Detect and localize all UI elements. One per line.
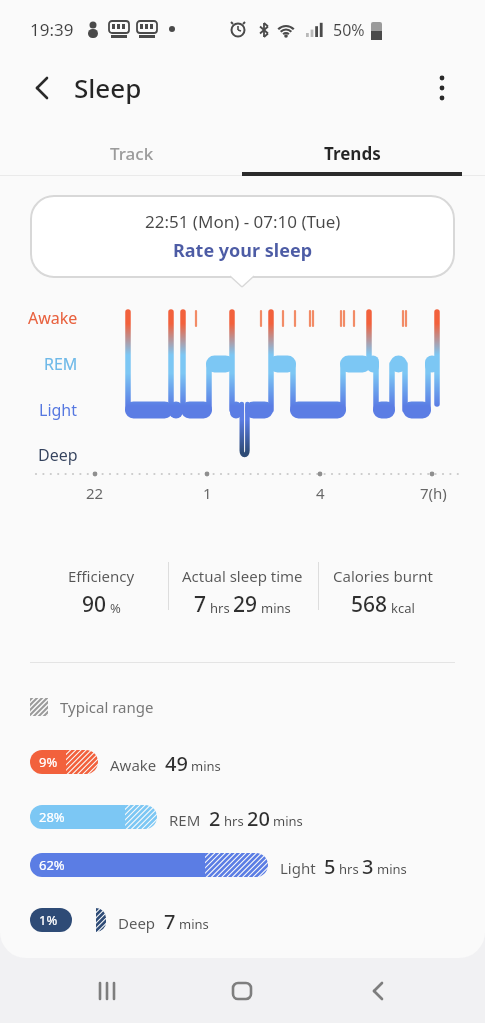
staticText: % xyxy=(110,599,121,617)
staticText: 7(h) xyxy=(420,483,447,503)
button[interactable]: 62% xyxy=(30,853,205,877)
button[interactable]: 22:51 (Mon) - 07:10 (Tue) xyxy=(30,195,455,278)
button[interactable]: 568 xyxy=(308,590,458,618)
button[interactable] xyxy=(20,68,64,108)
staticText: 20 xyxy=(247,805,270,829)
staticText: 28% xyxy=(39,808,65,826)
staticText: 29 xyxy=(233,590,258,618)
staticText: mins xyxy=(261,599,291,617)
button[interactable]: 90 xyxy=(26,590,176,618)
staticText: REM xyxy=(169,810,201,830)
staticText: Calories burnt xyxy=(333,566,433,586)
button[interactable]: Trends xyxy=(242,130,462,176)
staticText: mins xyxy=(273,812,303,830)
staticText: Rate your sleep xyxy=(173,238,313,263)
staticText: hrs xyxy=(339,860,359,878)
staticText: 5 xyxy=(324,853,336,877)
staticText: Awake xyxy=(110,755,157,775)
staticText: 7 xyxy=(194,590,207,618)
staticText: 7 xyxy=(164,908,176,932)
button[interactable] xyxy=(212,958,272,1023)
staticText: 62% xyxy=(39,856,65,874)
staticText: 49 xyxy=(165,750,188,774)
staticText: 4 xyxy=(316,483,325,503)
staticText: Track xyxy=(110,142,154,165)
staticText: Sleep xyxy=(74,70,142,105)
button[interactable]: 7 xyxy=(167,590,317,618)
staticText: 19:39 xyxy=(30,18,74,41)
button[interactable] xyxy=(348,958,408,1023)
staticText: mins xyxy=(179,915,209,933)
staticText: 22 xyxy=(86,483,104,503)
staticText: Typical range xyxy=(60,697,154,717)
staticText: REM xyxy=(44,353,78,375)
staticText: mins xyxy=(191,757,221,775)
staticText: 568 xyxy=(351,590,388,618)
button[interactable]: 9% xyxy=(30,750,66,774)
button[interactable]: 1% xyxy=(30,908,72,932)
staticText: 50% xyxy=(333,19,365,41)
staticText: Light xyxy=(280,858,316,878)
staticText: Deep xyxy=(38,444,78,466)
button[interactable]: 28% xyxy=(30,805,125,829)
staticText: 22:51 (Mon) - 07:10 (Tue) xyxy=(145,210,341,233)
staticText: 90 xyxy=(82,590,107,618)
staticText: hrs xyxy=(210,599,230,617)
staticText: 9% xyxy=(39,753,58,771)
staticText: Efficiency xyxy=(68,566,135,586)
staticText: Trends xyxy=(324,142,381,165)
staticText: kcal xyxy=(391,599,415,617)
staticText: 1% xyxy=(39,911,58,929)
staticText: Deep xyxy=(118,913,156,933)
button[interactable] xyxy=(424,68,464,108)
button[interactable] xyxy=(77,958,137,1023)
staticText: 3 xyxy=(362,853,374,877)
staticText: 1 xyxy=(203,483,212,503)
staticText: Actual sleep time xyxy=(182,566,303,586)
button[interactable]: Track xyxy=(22,130,242,176)
staticText: Light xyxy=(39,399,78,421)
staticText: hrs xyxy=(224,812,244,830)
staticText: 2 xyxy=(209,805,221,829)
staticText: Awake xyxy=(28,307,78,329)
staticText: mins xyxy=(377,860,407,878)
